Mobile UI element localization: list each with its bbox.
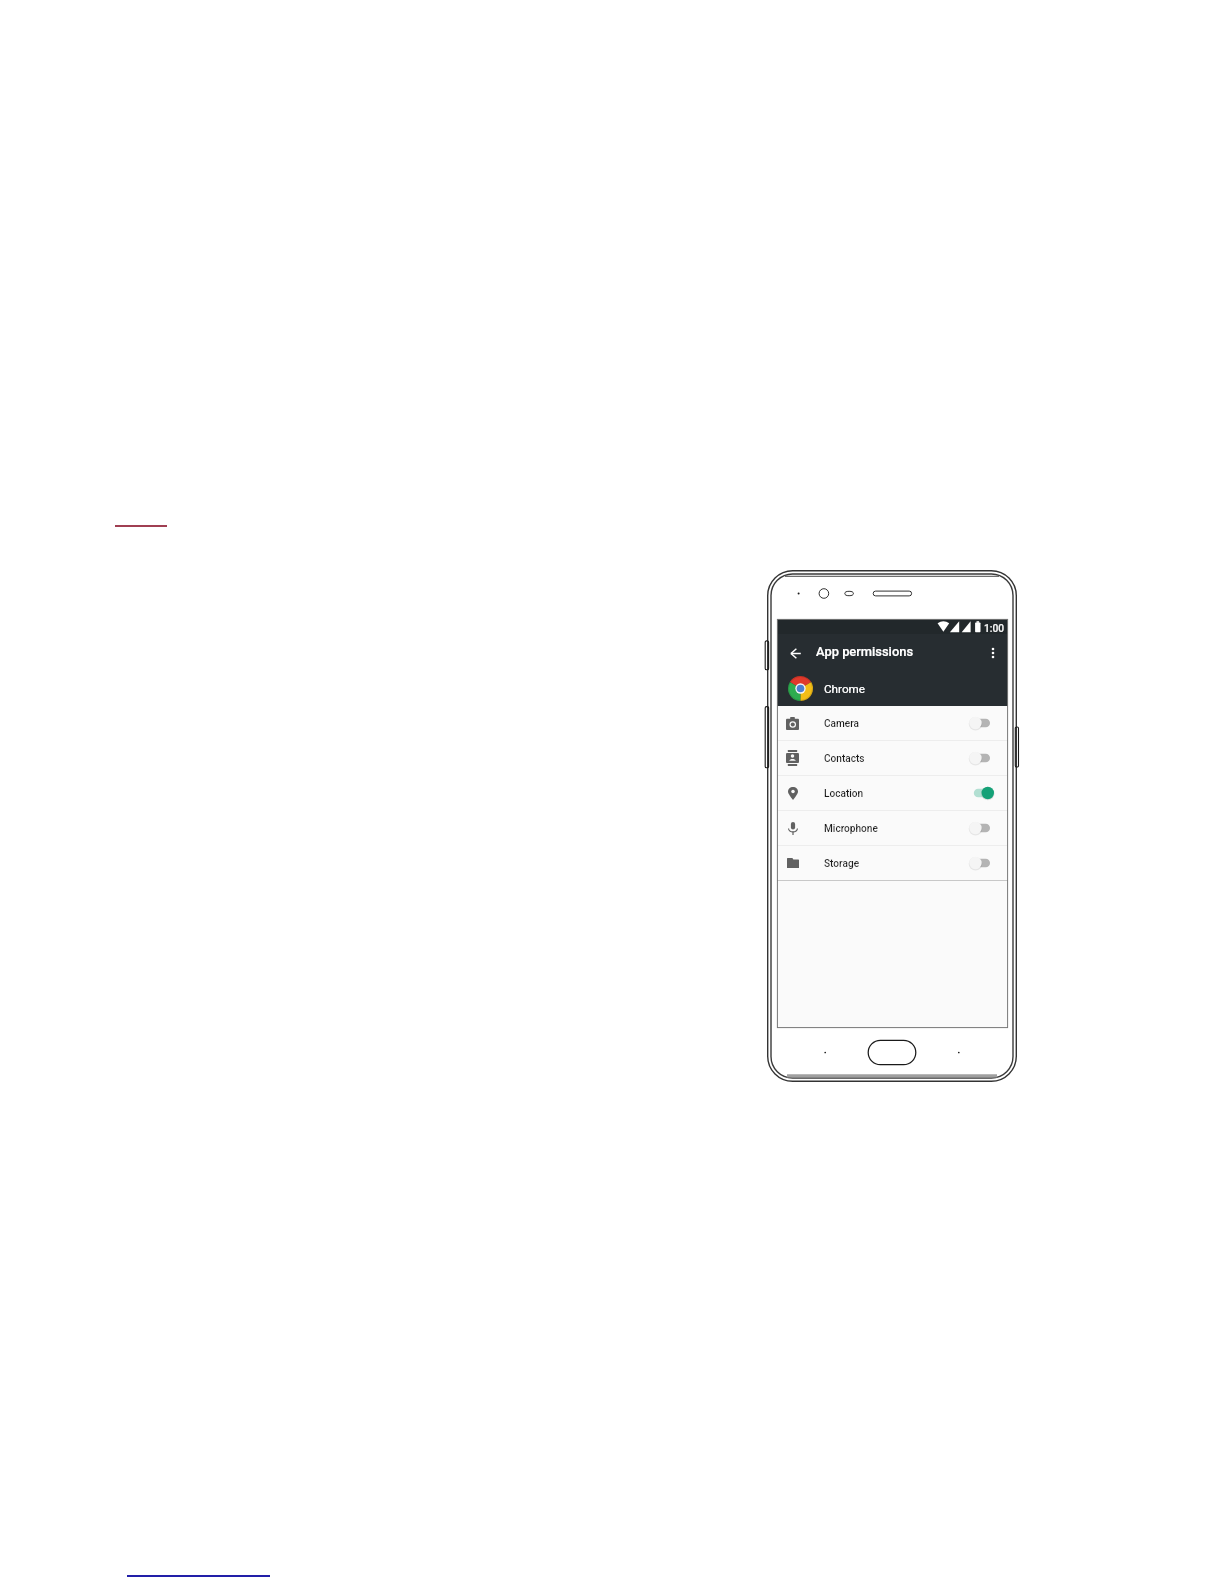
staticText: App permissions	[816, 644, 914, 659]
button[interactable]: Toggle Location permission	[969, 785, 994, 801]
button[interactable]: Camera	[777, 706, 1008, 740]
button[interactable]: Contacts	[777, 741, 1008, 775]
button[interactable]: Chrome	[777, 672, 1008, 706]
button[interactable]: Toggle Storage permission	[969, 855, 994, 871]
staticText: Microphone	[824, 823, 878, 835]
staticText: Camera	[824, 718, 860, 730]
button[interactable]: Navigate up	[783, 639, 807, 667]
button[interactable]: More options	[984, 639, 1002, 667]
staticText: 1:00	[984, 623, 1005, 635]
button[interactable]: Storage	[777, 846, 1008, 880]
staticText: Storage	[824, 858, 860, 870]
button[interactable]: Toggle Contacts permission	[969, 750, 994, 766]
button[interactable]: Toggle Microphone permission	[969, 820, 994, 836]
staticText: Contacts	[824, 753, 865, 765]
button[interactable]: Location	[777, 776, 1008, 810]
staticText: Chrome	[824, 682, 866, 696]
button[interactable]: Toggle Camera permission	[969, 715, 994, 731]
button[interactable]: Microphone	[777, 811, 1008, 845]
staticText: Location	[824, 788, 864, 800]
